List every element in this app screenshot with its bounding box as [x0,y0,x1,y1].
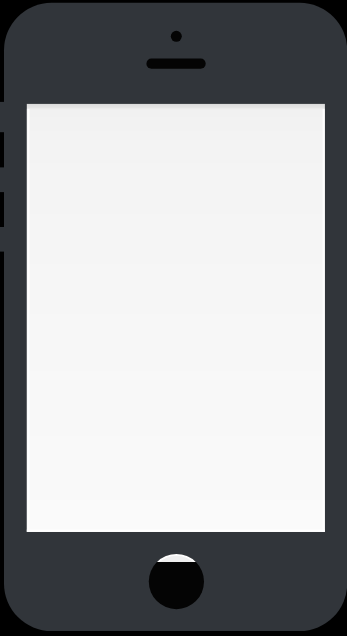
button[interactable]: Home button [149,554,204,609]
button[interactable]: Smartphone [0,0,347,636]
